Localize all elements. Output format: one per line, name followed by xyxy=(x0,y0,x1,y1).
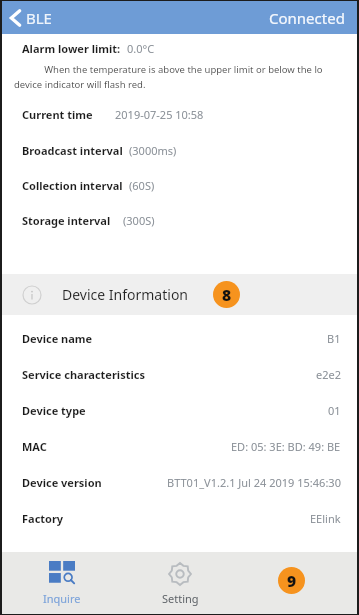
button[interactable]: Device name xyxy=(2,331,357,346)
button[interactable]: Storage interval xyxy=(2,193,357,228)
staticText: Device version xyxy=(22,475,102,490)
staticText: Connected xyxy=(269,8,345,28)
staticText: (60S) xyxy=(129,178,155,193)
staticText: Device type xyxy=(22,403,86,418)
button[interactable]: Broadcast interval xyxy=(2,122,357,158)
staticText: (3000ms) xyxy=(129,143,177,158)
button[interactable]: Alarm lower limit: xyxy=(2,34,357,56)
button[interactable]: Collection interval xyxy=(2,158,357,193)
staticText: When the temperature is above the upper … xyxy=(22,63,323,76)
staticText: EElink xyxy=(310,511,341,526)
staticText: Device name xyxy=(22,331,93,346)
button[interactable]: MAC xyxy=(2,418,357,454)
staticText: e2e2 xyxy=(316,367,341,382)
staticText: Setting xyxy=(162,591,199,606)
staticText: ED: 05: 3E: BD: 49: BE xyxy=(231,439,341,454)
staticText: MAC xyxy=(22,439,47,454)
staticText: Inquire xyxy=(43,591,81,606)
button[interactable]: Inquire xyxy=(2,552,121,614)
staticText: Collection interval xyxy=(22,178,123,193)
staticText: Storage interval xyxy=(22,213,111,228)
button[interactable]: Device version xyxy=(2,454,357,490)
button[interactable]: Current time xyxy=(2,91,357,122)
button[interactable]: Back to BLE xyxy=(2,4,62,32)
button[interactable]: Service characteristics xyxy=(2,346,357,382)
button[interactable]: Device type xyxy=(2,382,357,418)
staticText: BLE xyxy=(26,8,52,28)
staticText: 01 xyxy=(328,403,341,418)
button[interactable]: Factory xyxy=(2,490,357,526)
staticText: 9 xyxy=(287,570,297,591)
button[interactable]: Setting xyxy=(121,552,239,614)
staticText: Current time xyxy=(22,107,93,122)
staticText: Broadcast interval xyxy=(22,143,123,158)
button[interactable]: Device Information xyxy=(2,274,357,315)
staticText: Alarm lower limit: xyxy=(22,41,121,56)
staticText: Service characteristics xyxy=(22,367,145,382)
staticText: B1 xyxy=(327,331,341,346)
staticText: 0.0°C xyxy=(127,41,155,56)
staticText: Factory xyxy=(22,511,64,526)
staticText: Device Information xyxy=(62,285,189,304)
staticText: 8 xyxy=(222,284,232,305)
staticText: 2019-07-25 10:58 xyxy=(115,107,204,122)
staticText: device indicator will flash red. xyxy=(14,78,146,91)
staticText: (300S) xyxy=(123,213,155,228)
staticText: BTT01_V1.2.1 Jul 24 2019 15:46:30 xyxy=(167,475,341,490)
